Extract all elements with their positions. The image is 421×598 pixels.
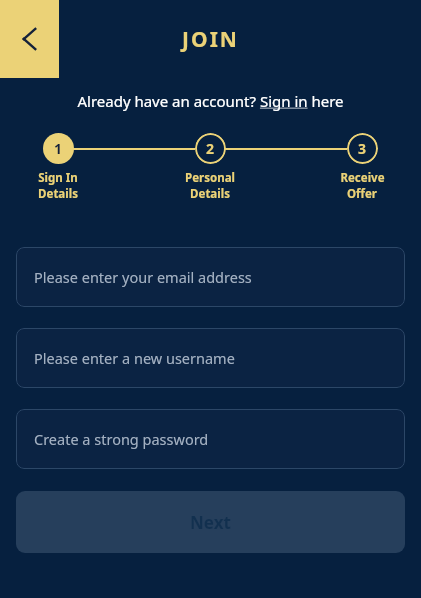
staticText: Please enter a new username bbox=[34, 348, 235, 368]
staticText: 2 bbox=[206, 139, 215, 158]
staticText: Already have an account? Sign in here bbox=[77, 91, 344, 111]
staticText: Details bbox=[38, 186, 78, 202]
staticText: JOIN bbox=[0, 25, 421, 54]
staticText: Details bbox=[190, 186, 230, 202]
button[interactable]: 2 bbox=[158, 133, 262, 202]
staticText: 1 bbox=[54, 139, 63, 158]
staticText: Personal bbox=[185, 170, 235, 186]
button[interactable]: Back bbox=[0, 0, 59, 78]
staticText: Create a strong password bbox=[34, 429, 209, 449]
staticText: Please enter your email address bbox=[34, 267, 252, 287]
button[interactable]: 1 bbox=[6, 133, 110, 202]
button[interactable]: 3 bbox=[310, 133, 414, 202]
button[interactable]: Please enter your email address bbox=[16, 247, 405, 307]
button[interactable]: Already have an account? Sign in here bbox=[73, 89, 348, 113]
staticText: Offer bbox=[347, 186, 377, 202]
button[interactable]: Please enter a new username bbox=[16, 328, 405, 388]
staticText: Sign In bbox=[38, 170, 78, 186]
staticText: Next bbox=[190, 511, 231, 534]
staticText: Receive bbox=[340, 170, 385, 186]
button[interactable]: Create a strong password bbox=[16, 409, 405, 469]
staticText: 3 bbox=[358, 139, 367, 158]
